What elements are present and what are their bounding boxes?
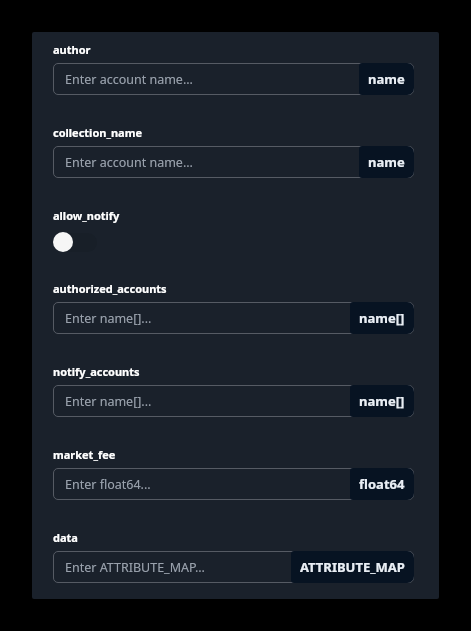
button[interactable]: Enter account name... <box>53 63 414 95</box>
button[interactable]: name[] <box>350 302 414 334</box>
staticText: Enter ATTRIBUTE_MAP... <box>65 559 205 576</box>
staticText: Enter account name... <box>65 71 193 88</box>
staticText: name[] <box>359 392 405 410</box>
staticText: Enter name[]... <box>65 310 152 327</box>
button[interactable]: Enter name[]... <box>53 385 414 417</box>
button[interactable]: Enter float64... <box>53 468 414 500</box>
staticText: ATTRIBUTE_MAP <box>300 558 405 576</box>
button[interactable]: name <box>359 63 414 95</box>
button[interactable]: Enter ATTRIBUTE_MAP... <box>53 551 414 583</box>
staticText: name <box>368 153 405 171</box>
staticText: collection_name <box>53 125 142 140</box>
button[interactable]: name <box>359 146 414 178</box>
button[interactable]: Enter name[]... <box>53 302 414 334</box>
staticText: authorized_accounts <box>53 281 167 296</box>
staticText: notify_accounts <box>53 364 140 379</box>
staticText: author <box>53 42 91 57</box>
staticText: Enter name[]... <box>65 393 152 410</box>
staticText: market_fee <box>53 447 116 462</box>
staticText: float64 <box>359 475 405 493</box>
staticText: Enter account name... <box>65 154 193 171</box>
button[interactable]: float64 <box>350 468 414 500</box>
button[interactable]: name[] <box>350 385 414 417</box>
staticText: name <box>368 70 405 88</box>
staticText: data <box>53 530 78 545</box>
button[interactable]: Enter account name... <box>53 146 414 178</box>
staticText: allow_notify <box>53 208 120 223</box>
staticText: Enter float64... <box>65 476 151 493</box>
button[interactable]: Toggle allow_notify <box>53 232 97 252</box>
staticText: name[] <box>359 309 405 327</box>
button[interactable]: ATTRIBUTE_MAP <box>291 551 414 583</box>
